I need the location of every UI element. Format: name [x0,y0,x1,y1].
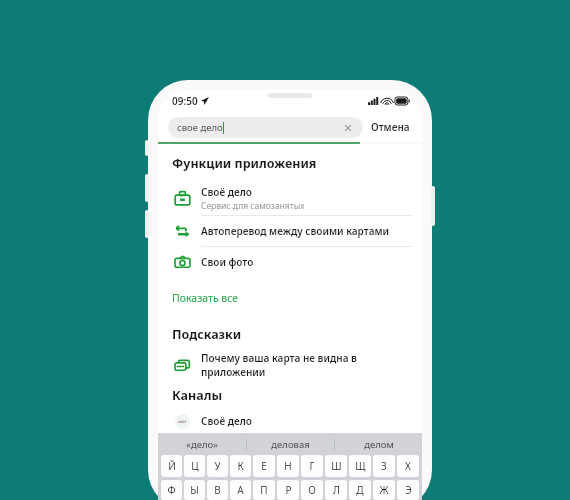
button[interactable]: У [207,455,228,477]
staticText: Ж [379,483,389,497]
staticText: Г [309,459,315,473]
staticText: Щ [355,459,366,473]
staticText: Показать все [172,291,239,305]
button[interactable]: sdel [158,409,422,433]
button[interactable]: делом [335,433,422,455]
staticText: свое дело [177,121,223,134]
button[interactable]: О [301,480,323,500]
staticText: З [381,459,387,473]
button[interactable]: Автоперевод между своими картами [158,216,422,246]
staticText: Е [261,459,267,473]
staticText: Сервис для самозанятых [201,200,305,212]
button[interactable]: Ш [325,455,347,477]
button[interactable]: «дело» [158,433,246,455]
button[interactable]: Л [325,480,347,500]
button[interactable]: З [373,455,395,477]
staticText: В [214,483,221,497]
staticText: «дело» [186,438,218,451]
staticText: Почему ваша карта не видна в приложении [201,351,412,379]
button[interactable]: Щ [349,455,371,477]
button[interactable]: Ы [184,480,205,500]
staticText: делом [364,438,394,451]
button[interactable]: Clear [342,122,354,134]
staticText: Отмена [371,120,410,134]
staticText: Ш [331,459,342,473]
button[interactable]: Ц [184,455,205,477]
button[interactable]: свое дело [168,117,363,138]
button[interactable]: П [253,480,275,500]
button[interactable]: К [230,455,251,477]
staticText: Каналы [172,387,223,404]
button[interactable]: А [230,480,251,500]
staticText: Э [405,483,412,497]
staticText: Р [285,483,292,497]
staticText: Свои фото [201,255,254,269]
staticText: П [260,483,268,497]
button[interactable]: Р [277,480,299,500]
staticText: Н [284,459,292,473]
button[interactable]: Г [301,455,323,477]
button[interactable]: Ж [373,480,395,500]
button[interactable]: Е [253,455,275,477]
button[interactable]: Отмена [363,120,412,134]
staticText: А [237,483,244,497]
staticText: О [308,483,316,497]
staticText: sdel [178,419,187,424]
button[interactable]: Й [161,455,182,477]
staticText: Ы [190,483,199,497]
staticText: Своё дело [201,185,252,199]
button[interactable]: Свои фото [158,247,422,277]
button[interactable]: Своё дело [158,181,422,215]
staticText: Ц [191,459,199,473]
staticText: Автоперевод между своими картами [201,224,390,238]
staticText: Х [405,459,411,473]
button[interactable]: В [207,480,228,500]
button[interactable]: Э [397,480,419,500]
staticText: Своё дело [201,414,252,428]
staticText: Д [356,483,364,497]
button[interactable]: Х [397,455,419,477]
staticText: Подсказки [172,326,242,343]
staticText: деловая [271,438,310,451]
button[interactable]: Д [349,480,371,500]
staticText: Л [333,483,340,497]
staticText: К [237,459,244,473]
staticText: Функции приложения [172,155,317,172]
button[interactable]: Н [277,455,299,477]
button[interactable]: Почему ваша карта не видна в приложении [158,350,422,380]
staticText: У [214,459,221,473]
staticText: Ф [167,483,176,497]
button[interactable]: Ф [161,480,182,500]
button[interactable]: Показать все [158,287,422,309]
staticText: 09:50 [172,94,198,108]
staticText: Й [168,459,176,473]
button[interactable]: деловая [247,433,334,455]
